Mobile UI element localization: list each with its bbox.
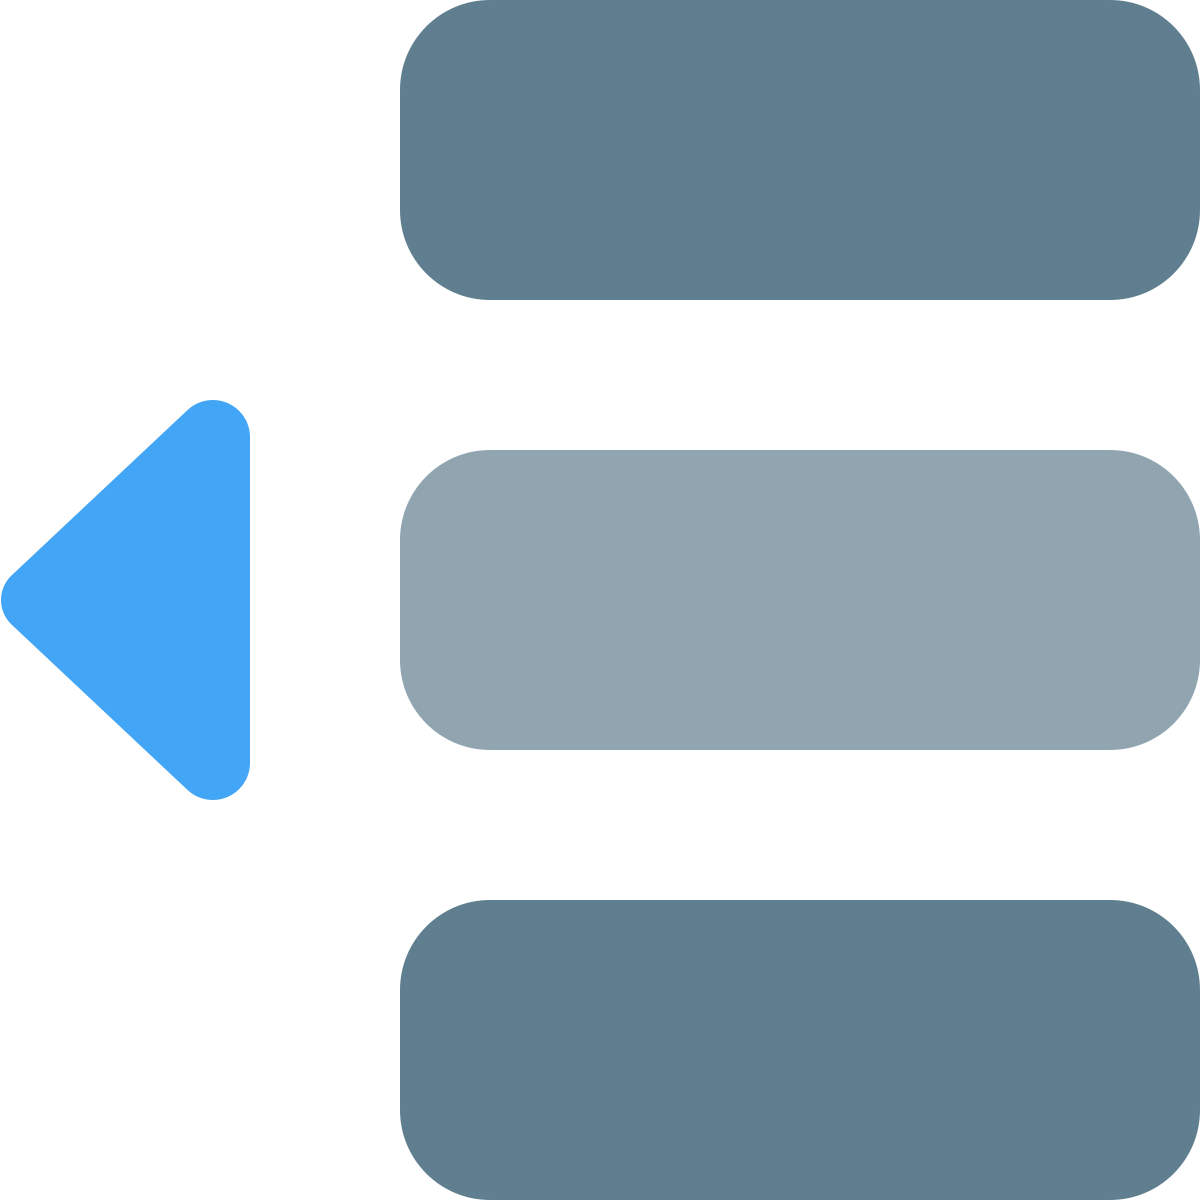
- button[interactable]: Collapse sidebar: [0, 0, 1200, 1200]
